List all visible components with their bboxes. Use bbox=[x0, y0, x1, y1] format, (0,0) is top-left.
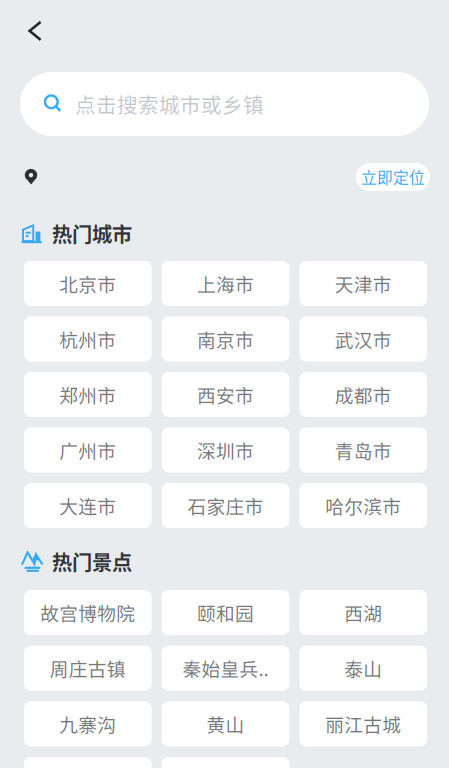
staticText: 黄山 bbox=[206, 710, 244, 737]
button[interactable]: 上海市 bbox=[162, 261, 289, 306]
button[interactable]: 哈尔滨市 bbox=[299, 483, 427, 528]
button[interactable]: 杭州市 bbox=[24, 316, 152, 361]
staticText: 武汉市 bbox=[335, 325, 392, 352]
button[interactable]: 石家庄市 bbox=[162, 483, 289, 528]
staticText: 天津市 bbox=[335, 270, 392, 297]
staticText: 石家庄市 bbox=[187, 492, 263, 519]
button[interactable]: Back bbox=[11, 7, 59, 55]
staticText: 热门城市 bbox=[52, 219, 132, 248]
button[interactable]: 郑州市 bbox=[24, 372, 152, 417]
button[interactable]: 武汉市 bbox=[299, 316, 427, 361]
staticText: 上海市 bbox=[197, 270, 254, 297]
staticText: 广州市 bbox=[59, 436, 116, 463]
button[interactable]: 广州市 bbox=[24, 427, 152, 472]
staticText: 北京市 bbox=[59, 270, 116, 297]
button[interactable]: 天津市 bbox=[299, 261, 427, 306]
staticText: 立即定位 bbox=[361, 166, 425, 188]
button[interactable]: 西安市 bbox=[162, 372, 289, 417]
button[interactable]: 西湖 bbox=[299, 590, 427, 635]
staticText: 点击搜索城市或乡镇 bbox=[75, 89, 264, 119]
staticText: 周庄古镇 bbox=[50, 655, 126, 682]
button[interactable]: 北京市 bbox=[24, 261, 152, 306]
staticText: 杭州市 bbox=[59, 325, 116, 352]
button[interactable]: 青岛市 bbox=[299, 427, 427, 472]
button[interactable]: 九寨沟 bbox=[24, 701, 152, 746]
staticText: 丽江古城 bbox=[325, 710, 401, 737]
button[interactable]: 颐和园 bbox=[162, 590, 289, 635]
staticText: 故宫博物院 bbox=[40, 599, 135, 626]
staticText: 南京市 bbox=[197, 325, 254, 352]
staticText: 九寨沟 bbox=[59, 710, 116, 737]
staticText: 大连市 bbox=[59, 492, 116, 519]
staticText: 成都市 bbox=[335, 381, 392, 408]
button[interactable]: 大连市 bbox=[24, 483, 152, 528]
staticText: 深圳市 bbox=[197, 436, 254, 463]
button[interactable]: 立即定位 bbox=[356, 163, 430, 191]
button[interactable]: 秦始皇兵.. bbox=[162, 646, 289, 691]
button[interactable]: 周庄古镇 bbox=[24, 646, 152, 691]
staticText: 西安市 bbox=[197, 381, 254, 408]
staticText: 西湖 bbox=[344, 599, 382, 626]
button[interactable]: 泰山 bbox=[299, 646, 427, 691]
button[interactable]: 故宫博物院 bbox=[24, 590, 152, 635]
staticText: 哈尔滨市 bbox=[325, 492, 401, 519]
staticText: 秦始皇兵.. bbox=[182, 655, 268, 682]
button[interactable]: 点击搜索城市或乡镇 bbox=[20, 72, 429, 136]
staticText: 青岛市 bbox=[335, 436, 392, 463]
button[interactable]: 丽江古城 bbox=[299, 701, 427, 746]
staticText: 泰山 bbox=[344, 655, 382, 682]
staticText: 颐和园 bbox=[197, 599, 254, 626]
staticText: 郑州市 bbox=[59, 381, 116, 408]
button[interactable]: 深圳市 bbox=[162, 427, 289, 472]
button[interactable]: 南京市 bbox=[162, 316, 289, 361]
button[interactable]: 黄山 bbox=[162, 701, 289, 746]
button[interactable]: 成都市 bbox=[299, 372, 427, 417]
staticText: 热门景点 bbox=[52, 547, 132, 576]
